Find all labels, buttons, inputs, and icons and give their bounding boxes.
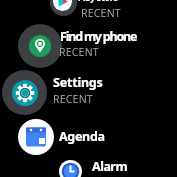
staticText: Alarm [92,158,128,175]
staticText: RECENT [53,92,93,106]
button[interactable] [18,24,148,68]
staticText: RECENT [81,6,121,20]
button[interactable] [50,0,177,19]
staticText: Find my phone [60,28,137,45]
button[interactable] [18,119,128,155]
staticText: RECENT [59,45,99,59]
staticText: Agenda [59,128,105,145]
staticText: Play Store [78,0,118,3]
button[interactable] [59,156,129,177]
button[interactable] [2,70,132,116]
staticText: Settings [53,74,103,91]
